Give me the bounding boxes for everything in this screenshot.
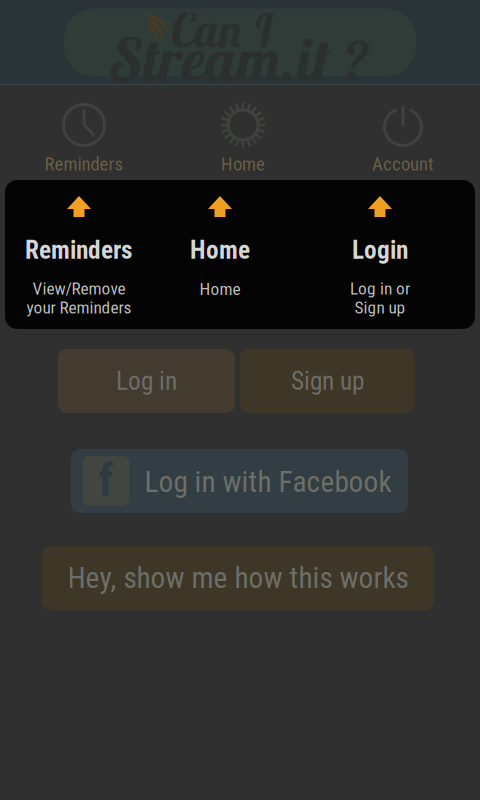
staticText: f: [98, 454, 113, 507]
staticText: Home: [221, 153, 265, 175]
button[interactable]: Home: [168, 85, 318, 179]
button[interactable]: Account: [328, 85, 478, 179]
staticText: Home: [199, 279, 240, 299]
button[interactable]: f: [71, 449, 408, 513]
button[interactable]: Sign up: [240, 349, 415, 413]
staticText: Home: [190, 235, 250, 265]
staticText: Sign up: [291, 366, 364, 396]
button[interactable]: Hey, show me how this works: [42, 546, 434, 610]
staticText: Account: [372, 153, 434, 175]
staticText: Reminders: [25, 235, 133, 265]
staticText: Login: [352, 235, 408, 265]
staticText: Can I: [170, 1, 272, 59]
staticText: View/Remove: [32, 278, 125, 299]
staticText: Sign up: [354, 297, 405, 318]
staticText: Stream.it ?: [110, 21, 367, 96]
staticText: Reminders: [44, 153, 123, 175]
staticText: Log in or: [350, 278, 410, 299]
staticText: Hey, show me how this works: [67, 561, 408, 595]
staticText: Log in with Facebook: [144, 465, 391, 499]
staticText: Log in: [116, 366, 177, 396]
staticText: your Reminders: [26, 297, 131, 318]
button[interactable]: Reminders: [9, 85, 159, 179]
button[interactable]: Log in: [58, 349, 235, 413]
